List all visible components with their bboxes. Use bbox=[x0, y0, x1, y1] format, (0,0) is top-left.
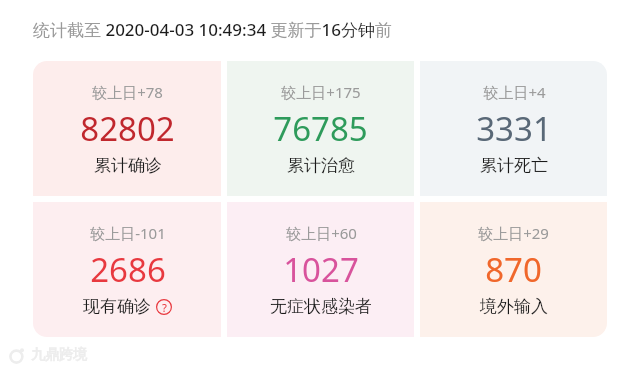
staticText: 现有确诊 bbox=[83, 296, 151, 317]
staticText: 统计截至 2020-04-03 10:49:34 更新于16分钟前 bbox=[33, 18, 393, 41]
staticText: 累计治愈 bbox=[287, 155, 355, 176]
button[interactable]: 较上日+4 bbox=[420, 61, 607, 196]
staticText: 累计死亡 bbox=[480, 155, 548, 176]
staticText: 境外输入 bbox=[480, 296, 548, 317]
staticText: 较上日+78 bbox=[92, 82, 163, 102]
button[interactable]: 较上日+175 bbox=[227, 61, 414, 196]
staticText: 较上日+60 bbox=[286, 223, 357, 243]
button[interactable]: 较上日+60 bbox=[227, 202, 414, 337]
staticText: 九鼎跨境 bbox=[31, 346, 87, 364]
button[interactable]: 较上日-101 bbox=[33, 202, 221, 337]
staticText: 3331 bbox=[476, 106, 552, 151]
button[interactable]: 较上日+29 bbox=[420, 202, 607, 337]
staticText: 870 bbox=[485, 247, 542, 292]
staticText: 82802 bbox=[80, 106, 175, 151]
staticText: 较上日+175 bbox=[281, 82, 361, 102]
staticText: ? bbox=[162, 300, 167, 315]
staticText: 较上日-101 bbox=[90, 223, 166, 243]
staticText: 较上日+4 bbox=[483, 82, 546, 102]
staticText: 1027 bbox=[283, 247, 359, 292]
staticText: 累计确诊 bbox=[94, 155, 162, 176]
staticText: 2686 bbox=[90, 247, 166, 292]
button[interactable]: Help: what is current confirmed bbox=[156, 299, 172, 315]
staticText: 无症状感染者 bbox=[270, 296, 372, 317]
staticText: 76785 bbox=[273, 106, 368, 151]
button[interactable]: 较上日+78 bbox=[33, 61, 221, 196]
staticText: 较上日+29 bbox=[478, 223, 549, 243]
